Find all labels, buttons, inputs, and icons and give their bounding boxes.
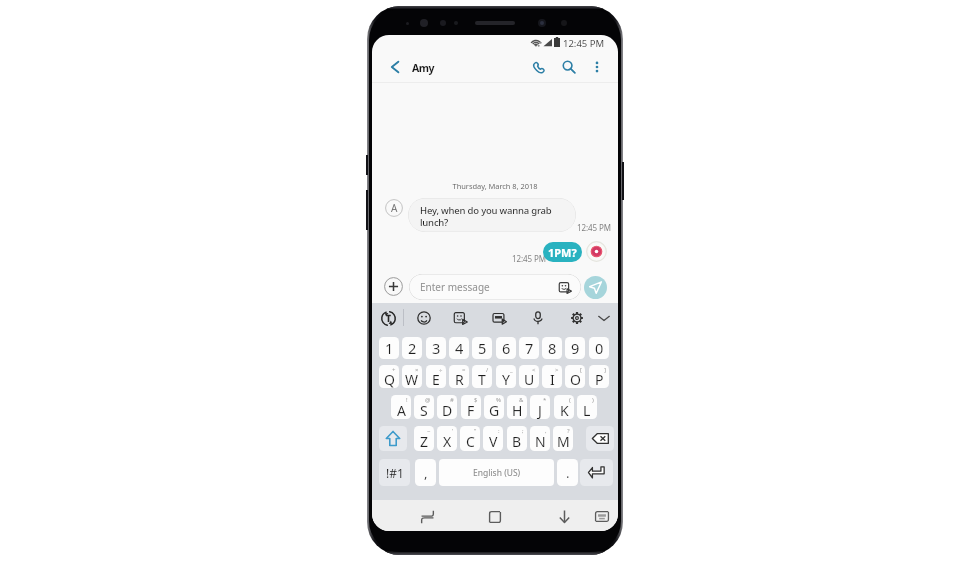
staticText: ) — [592, 396, 594, 404]
staticText: 9 — [571, 338, 580, 358]
button[interactable]: Search — [559, 57, 579, 77]
button[interactable]: Voice input — [531, 311, 545, 325]
button[interactable]: Recents — [421, 510, 434, 524]
button[interactable]: ÷ — [426, 365, 446, 388]
button[interactable]: 8 — [542, 337, 562, 359]
button[interactable]: Back — [385, 57, 405, 77]
button[interactable]: < — [519, 365, 539, 388]
staticText: E — [432, 370, 440, 388]
staticText: 2 — [408, 338, 417, 358]
staticText: Amy — [412, 61, 435, 75]
button[interactable]: ] — [589, 365, 609, 388]
staticText: T — [478, 370, 486, 388]
button[interactable]: Add attachment — [384, 277, 403, 296]
button[interactable]: 2 — [402, 337, 422, 359]
button[interactable]: 1PM? — [543, 242, 582, 262]
button[interactable]: = — [449, 365, 469, 388]
staticText: : — [498, 427, 500, 435]
staticText: @ — [425, 396, 431, 404]
button[interactable]: Call — [529, 57, 549, 77]
staticText: L — [583, 401, 591, 419]
staticText: 8 — [548, 338, 557, 358]
button[interactable]: 1 — [379, 337, 399, 359]
staticText: 12:45 PM — [577, 222, 611, 233]
button[interactable]: % — [484, 395, 504, 419]
button[interactable]: * — [530, 395, 550, 419]
staticText: B — [512, 432, 522, 451]
staticText: K — [560, 401, 569, 419]
button[interactable]: ; — [507, 426, 527, 451]
staticText: 12:45 PM — [563, 37, 605, 50]
button[interactable]: " — [460, 426, 480, 451]
button[interactable]: 3 — [426, 337, 446, 359]
button[interactable]: Translate — [381, 310, 396, 327]
button[interactable]: + — [379, 365, 399, 388]
staticText: . — [566, 464, 570, 482]
staticText: X — [443, 432, 452, 451]
button[interactable]: Keyboard settings — [570, 311, 584, 325]
staticText: " — [474, 427, 477, 435]
staticText: + — [392, 366, 396, 374]
button[interactable]: 7 — [519, 337, 539, 359]
button[interactable]: 6 — [496, 337, 516, 359]
button[interactable]: & — [507, 395, 527, 419]
button[interactable]: , — [530, 426, 550, 451]
button[interactable]: Shift — [379, 426, 407, 451]
staticText: × — [415, 366, 419, 374]
staticText: > — [555, 366, 559, 374]
button[interactable]: / — [472, 365, 492, 388]
button[interactable]: ' — [437, 426, 457, 451]
button[interactable]: 9 — [565, 337, 585, 359]
button[interactable]: ( — [554, 395, 574, 419]
button[interactable]: ? — [553, 426, 573, 451]
button[interactable]: [ — [565, 365, 585, 388]
button[interactable]: ! — [391, 395, 411, 419]
staticText: * — [543, 396, 547, 404]
button[interactable]: More options — [587, 57, 607, 77]
button[interactable]: English (US) — [439, 459, 554, 486]
staticText: _ — [510, 366, 513, 374]
button[interactable]: Send — [584, 276, 607, 299]
button[interactable]: Stickers — [454, 311, 468, 325]
button[interactable]: Collapse keyboard — [597, 311, 611, 325]
button[interactable]: Enter message — [409, 274, 581, 300]
staticText: S — [420, 401, 428, 419]
staticText: Q — [384, 370, 395, 388]
staticText: Z — [420, 432, 429, 451]
button[interactable]: $ — [461, 395, 481, 419]
button[interactable]: _ — [496, 365, 516, 388]
button[interactable]: Enter — [580, 459, 613, 486]
staticText: = — [462, 366, 466, 374]
staticText: W — [405, 370, 419, 388]
button[interactable]: ) — [577, 395, 597, 419]
staticText: Hey, when do you wanna grab lunch? — [420, 204, 554, 229]
button[interactable]: . — [557, 459, 578, 486]
button[interactable]: Home — [489, 511, 501, 523]
button[interactable]: @ — [414, 395, 434, 419]
button[interactable]: Hide keyboard — [558, 510, 571, 523]
button[interactable]: Backspace — [586, 426, 614, 451]
button[interactable]: GIF — [493, 311, 507, 325]
button[interactable]: 0 — [589, 337, 609, 359]
staticText: , — [424, 464, 428, 482]
button[interactable]: 4 — [449, 337, 469, 359]
button[interactable]: # — [437, 395, 457, 419]
button[interactable]: 5 — [472, 337, 492, 359]
staticText: Y — [502, 370, 510, 388]
staticText: V — [489, 432, 498, 451]
button[interactable]: ~ — [414, 426, 434, 451]
staticText: , — [545, 427, 547, 435]
button[interactable]: Symbols — [379, 459, 410, 486]
staticText: / — [486, 366, 489, 374]
staticText: O — [570, 370, 581, 388]
button[interactable]: Keyboard layout — [595, 511, 609, 522]
staticText: 0 — [595, 338, 604, 358]
button[interactable]: Emoji — [417, 311, 431, 325]
staticText: J — [538, 401, 542, 419]
button[interactable]: Stickers — [559, 281, 572, 294]
staticText: 3 — [432, 338, 441, 358]
button[interactable]: × — [402, 365, 422, 388]
button[interactable]: : — [483, 426, 503, 451]
button[interactable]: > — [542, 365, 562, 388]
button[interactable]: , — [415, 459, 436, 486]
